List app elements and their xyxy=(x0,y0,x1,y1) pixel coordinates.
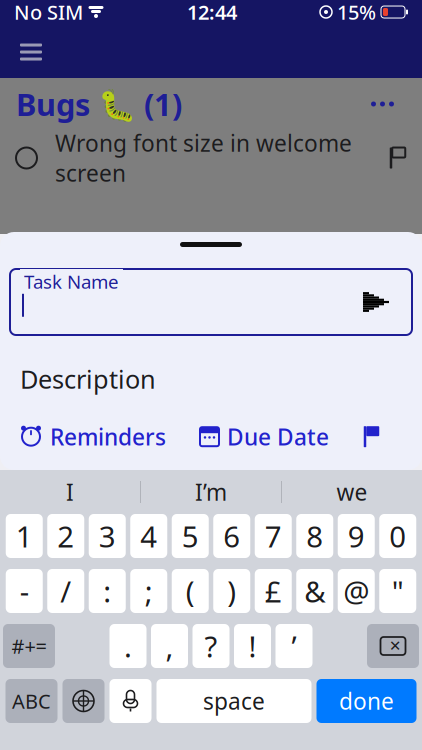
button[interactable]: ? xyxy=(192,624,229,668)
button[interactable]: £ xyxy=(255,569,292,613)
button[interactable]: @ xyxy=(338,569,375,613)
staticText: . xyxy=(124,626,132,665)
staticText: ’ xyxy=(291,626,296,665)
staticText: 9 xyxy=(348,516,365,555)
button[interactable]: space xyxy=(156,679,311,723)
staticText: 0 xyxy=(389,516,406,555)
button[interactable]: , xyxy=(151,624,188,668)
staticText: Reminders xyxy=(50,422,166,452)
button[interactable]: Reminders xyxy=(20,422,166,452)
button[interactable]: 1 xyxy=(6,514,43,558)
staticText: No SIM xyxy=(14,0,83,25)
staticText: ( xyxy=(186,571,195,610)
staticText: we xyxy=(336,477,367,507)
button[interactable]: 2 xyxy=(47,514,84,558)
staticText: 8 xyxy=(306,516,323,555)
button[interactable]: ABC xyxy=(5,679,57,723)
button[interactable]: Send xyxy=(356,285,396,319)
button[interactable]: ! xyxy=(234,624,271,668)
staticText: Due Date xyxy=(227,422,329,452)
button[interactable]: 8 xyxy=(296,514,333,558)
staticText: I xyxy=(66,477,74,507)
button[interactable]: 3 xyxy=(89,514,126,558)
staticText: 15% xyxy=(337,0,376,25)
staticText: Task Name xyxy=(24,269,119,294)
button[interactable]: Dictation xyxy=(109,679,151,723)
button[interactable]: 4 xyxy=(130,514,167,558)
button[interactable]: 7 xyxy=(255,514,292,558)
staticText: 6 xyxy=(223,516,240,555)
staticText: " xyxy=(392,571,404,610)
button[interactable]: 6 xyxy=(213,514,250,558)
button[interactable]: done xyxy=(316,679,416,723)
button[interactable]: - xyxy=(6,569,43,613)
button[interactable]: ’ xyxy=(275,624,312,668)
staticText: Description xyxy=(20,362,156,396)
button[interactable]: Priority flag xyxy=(363,422,380,451)
staticText: Wrong font size in welcome screen xyxy=(55,128,352,188)
button[interactable]: 9 xyxy=(338,514,375,558)
button[interactable]: More options xyxy=(359,89,406,118)
button[interactable]: . xyxy=(109,624,146,668)
staticText: : xyxy=(103,571,111,610)
staticText: / xyxy=(60,571,71,610)
button[interactable]: ) xyxy=(213,569,250,613)
button[interactable]: ; xyxy=(130,569,167,613)
staticText: ; xyxy=(145,571,153,610)
staticText: - xyxy=(20,571,29,610)
staticText: 12:44 xyxy=(187,0,237,25)
button[interactable]: 5 xyxy=(172,514,209,558)
staticText: 4 xyxy=(140,516,157,555)
staticText: 7 xyxy=(265,516,282,555)
button[interactable]: Next keyboard xyxy=(62,679,104,723)
button[interactable]: Delete xyxy=(367,624,419,668)
button[interactable]: " xyxy=(379,569,416,613)
button[interactable]: & xyxy=(296,569,333,613)
button[interactable]: #+= xyxy=(3,624,55,668)
button[interactable]: Menu xyxy=(10,33,52,70)
staticText: @ xyxy=(343,571,369,610)
staticText: 3 xyxy=(99,516,116,555)
staticText: ) xyxy=(227,571,236,610)
staticText: 1 xyxy=(16,516,33,555)
button[interactable]: I’m xyxy=(141,470,281,514)
button[interactable]: we xyxy=(282,470,422,514)
staticText: , xyxy=(165,626,173,665)
staticText: ABC xyxy=(12,688,51,714)
button[interactable]: Wrong font size in welcome screen xyxy=(0,130,422,186)
staticText: £ xyxy=(265,571,282,610)
button[interactable]: I xyxy=(0,470,140,514)
staticText: done xyxy=(339,686,394,716)
staticText: #+= xyxy=(11,633,46,659)
staticText: 2 xyxy=(57,516,74,555)
button[interactable]: ( xyxy=(172,569,209,613)
staticText: & xyxy=(304,571,325,610)
staticText: ! xyxy=(248,626,256,665)
staticText: I’m xyxy=(195,477,227,507)
button[interactable]: / xyxy=(47,569,84,613)
staticText: space xyxy=(203,686,265,716)
staticText: ? xyxy=(204,626,217,665)
button[interactable]: : xyxy=(89,569,126,613)
button[interactable]: Due Date xyxy=(200,422,329,452)
staticText: Bugs 🐛 (1) xyxy=(16,84,182,124)
button[interactable]: 0 xyxy=(379,514,416,558)
staticText: 5 xyxy=(182,516,199,555)
staticText: ✕ xyxy=(389,638,401,654)
